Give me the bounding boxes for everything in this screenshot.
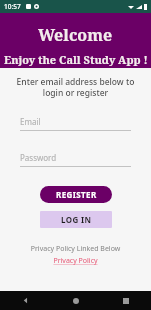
- staticText: LOG IN: [61, 214, 92, 225]
- button[interactable]: Back: [0, 291, 51, 310]
- button[interactable]: REGISTER: [40, 186, 112, 203]
- staticText: Privacy Policy Linked Below: [0, 244, 151, 254]
- button[interactable]: Home: [51, 291, 101, 310]
- staticText: REGISTER: [56, 189, 97, 200]
- staticText: Enjoy the Call Study App !: [4, 52, 148, 67]
- button[interactable]: Privacy Policy: [53, 256, 98, 266]
- staticText: Email: [20, 116, 41, 127]
- staticText: Enter email address below to login or re…: [10, 76, 141, 98]
- staticText: Password: [20, 152, 57, 163]
- button[interactable]: Recent apps: [101, 291, 151, 310]
- button[interactable]: LOG IN: [40, 211, 112, 228]
- staticText: 10:57: [4, 2, 21, 11]
- staticText: Welcome: [38, 24, 113, 46]
